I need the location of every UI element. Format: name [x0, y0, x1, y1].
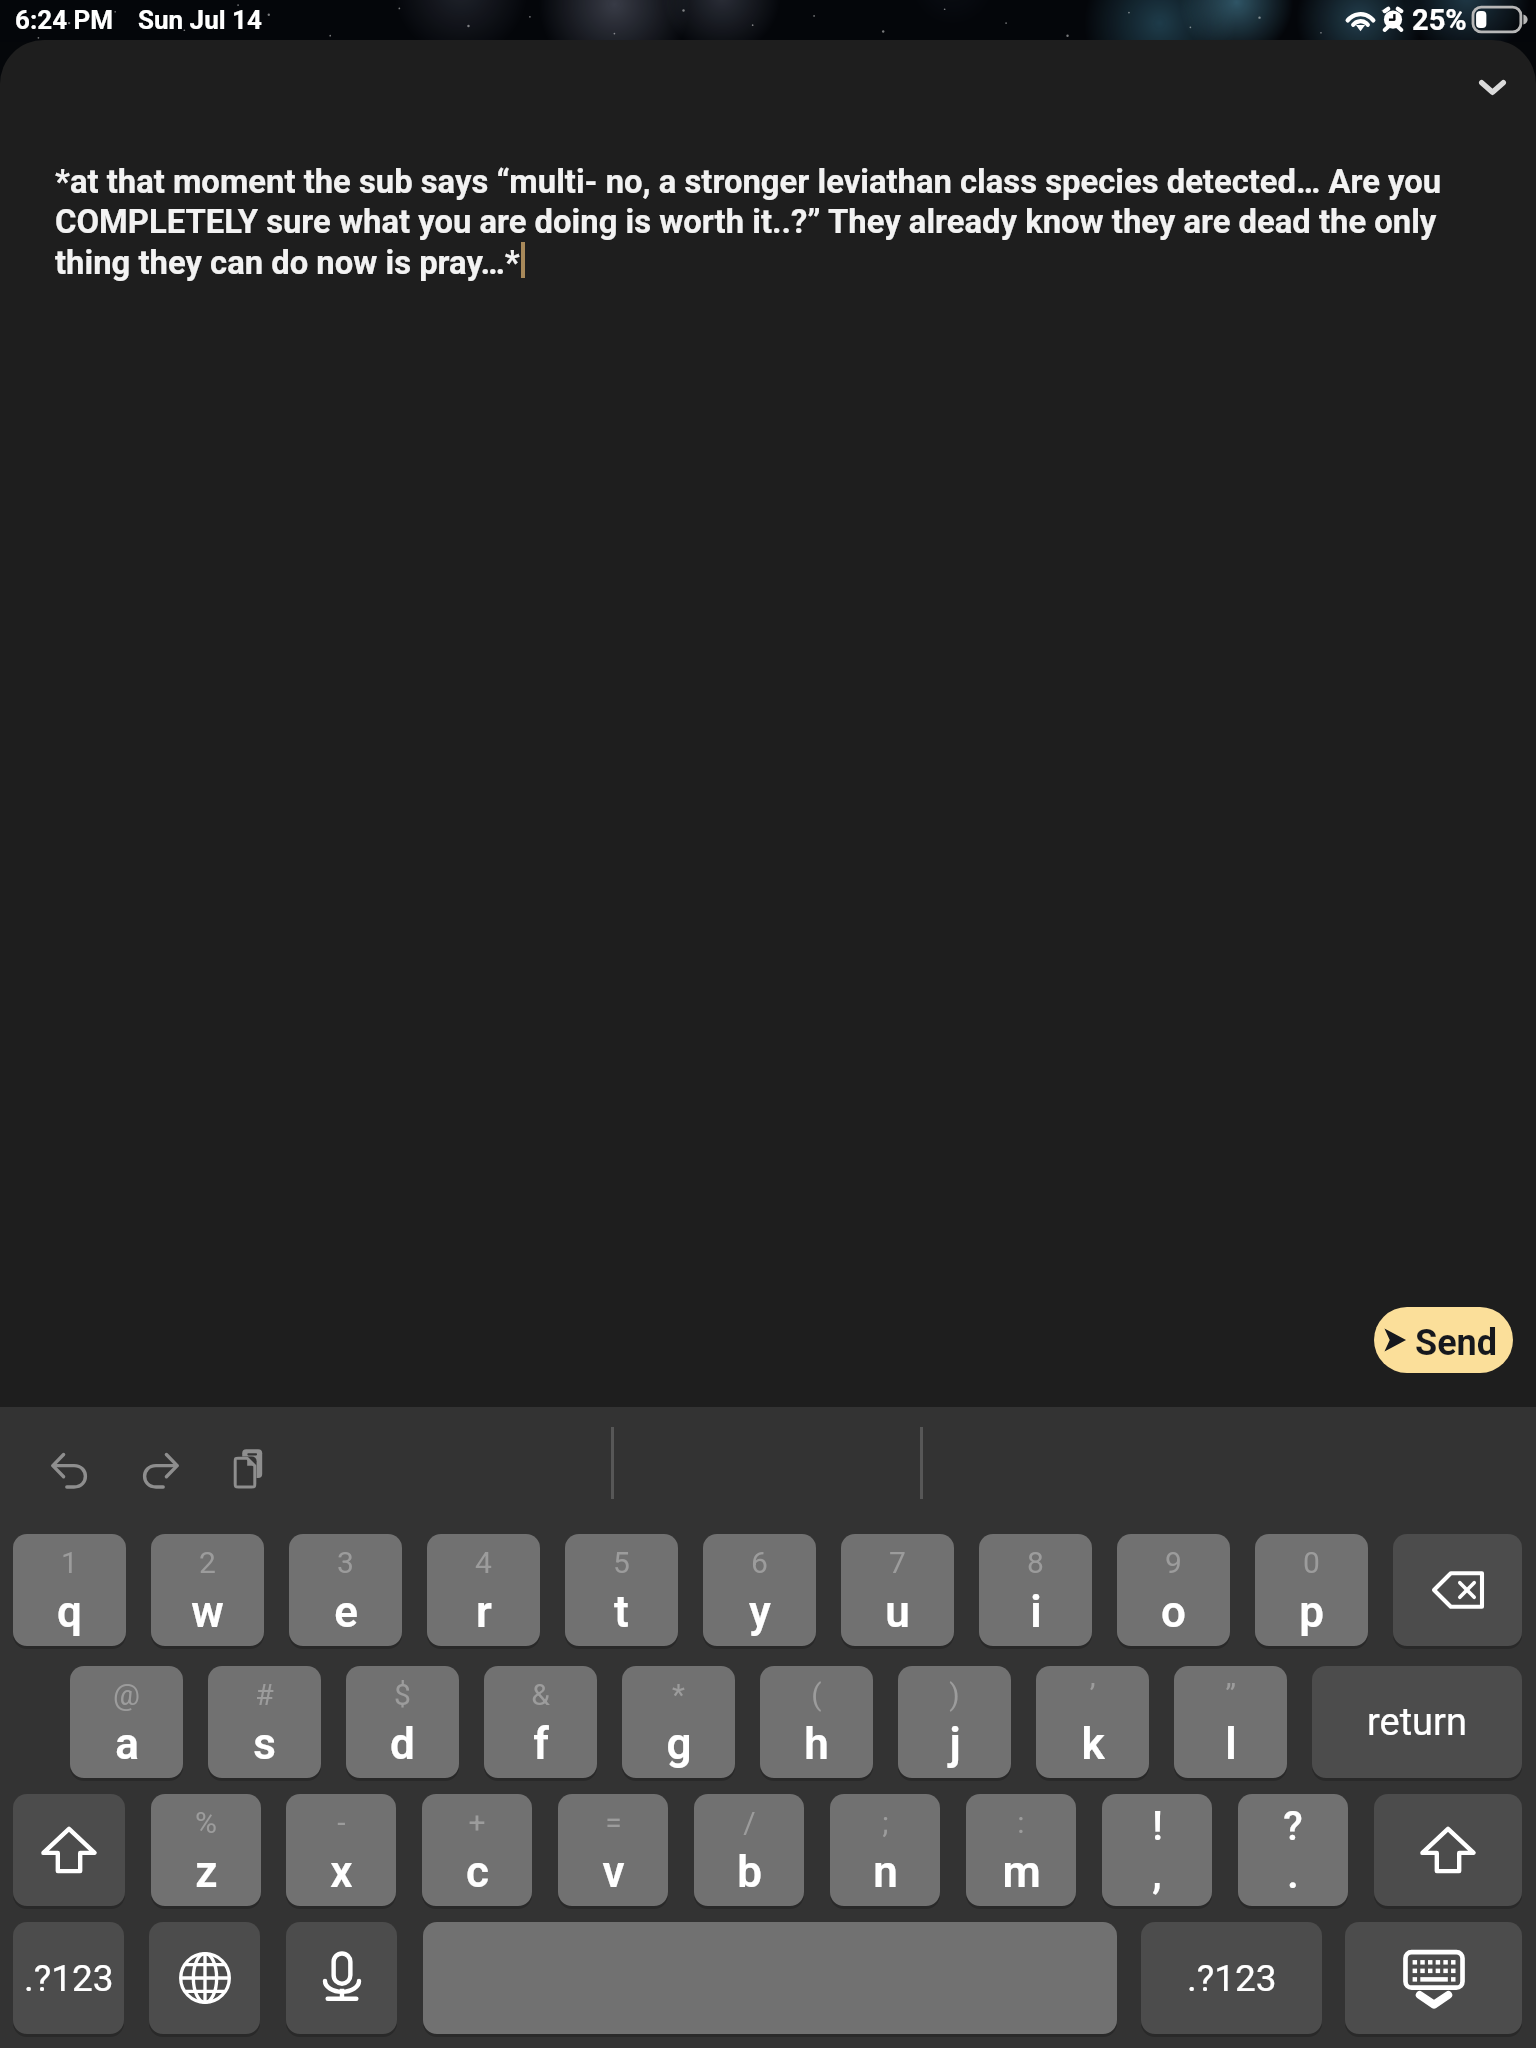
staticText: 3: [337, 1545, 354, 1580]
button[interactable]: (: [760, 1666, 873, 1778]
staticText: $: [394, 1677, 411, 1712]
staticText: ;: [882, 1805, 889, 1840]
staticText: w: [191, 1586, 224, 1638]
staticText: g: [666, 1718, 692, 1770]
button[interactable]: ’: [1036, 1666, 1149, 1778]
staticText: 2: [199, 1545, 216, 1580]
staticText: (: [811, 1677, 822, 1712]
staticText: thing they can do now is pray…*: [55, 244, 520, 282]
staticText: f: [533, 1718, 549, 1770]
button[interactable]: 5: [565, 1534, 678, 1646]
staticText: o: [1161, 1586, 1186, 1638]
staticText: x: [330, 1846, 353, 1898]
button[interactable]: 3: [289, 1534, 402, 1646]
button[interactable]: .?123: [1141, 1922, 1322, 2034]
staticText: u: [885, 1586, 910, 1638]
staticText: 1: [61, 1545, 78, 1580]
staticText: h: [804, 1718, 829, 1770]
button[interactable]: =: [558, 1794, 668, 1906]
button[interactable]: ?: [1238, 1794, 1348, 1906]
button[interactable]: 4: [427, 1534, 540, 1646]
staticText: Sun Jul 14: [138, 5, 262, 35]
staticText: Send: [1415, 1322, 1498, 1364]
button[interactable]: ”: [1174, 1666, 1287, 1778]
button[interactable]: Dictation: [286, 1922, 397, 2034]
staticText: v: [602, 1846, 625, 1898]
button[interactable]: 1: [13, 1534, 126, 1646]
button[interactable]: Undo: [36, 1434, 104, 1502]
staticText: ”: [1225, 1677, 1236, 1712]
staticText: @: [113, 1677, 140, 1712]
staticText: *at that moment the sub says “multi- no,…: [55, 163, 1442, 201]
staticText: 4: [475, 1545, 492, 1580]
button[interactable]: Collapse: [1458, 53, 1526, 121]
staticText: 25%: [1412, 3, 1467, 37]
button[interactable]: /: [694, 1794, 804, 1906]
button[interactable]: +: [422, 1794, 532, 1906]
button[interactable]: 8: [979, 1534, 1092, 1646]
staticText: l: [1225, 1718, 1237, 1770]
staticText: ’: [1089, 1677, 1096, 1712]
button[interactable]: Language: [149, 1922, 260, 2034]
button[interactable]: 9: [1117, 1534, 1230, 1646]
button[interactable]: ;: [830, 1794, 940, 1906]
button[interactable]: Shift: [1374, 1794, 1522, 1906]
staticText: :: [1017, 1805, 1025, 1840]
staticText: c: [466, 1846, 489, 1898]
button[interactable]: Backspace: [1393, 1534, 1522, 1646]
staticText: t: [614, 1586, 629, 1638]
button[interactable]: 6: [703, 1534, 816, 1646]
staticText: m: [1002, 1846, 1041, 1898]
button[interactable]: Redo: [126, 1434, 194, 1502]
staticText: d: [390, 1718, 415, 1770]
button[interactable]: .?123: [13, 1922, 124, 2034]
button[interactable]: #: [208, 1666, 321, 1778]
staticText: n: [873, 1846, 898, 1898]
button[interactable]: @: [70, 1666, 183, 1778]
staticText: +: [468, 1805, 486, 1840]
staticText: 0: [1303, 1545, 1320, 1580]
staticText: i: [1030, 1586, 1042, 1638]
staticText: &: [531, 1677, 550, 1712]
staticText: .?123: [1187, 1957, 1277, 2000]
staticText: ,: [1152, 1851, 1162, 1898]
staticText: #: [255, 1677, 274, 1712]
button[interactable]: -: [286, 1794, 396, 1906]
button[interactable]: *: [622, 1666, 735, 1778]
button[interactable]: 2: [151, 1534, 264, 1646]
staticText: 6:24 PM: [15, 5, 114, 35]
staticText: 8: [1027, 1545, 1044, 1580]
staticText: a: [115, 1718, 139, 1770]
staticText: %: [195, 1805, 217, 1840]
staticText: -: [337, 1805, 346, 1840]
button[interactable]: Shift: [13, 1794, 125, 1906]
staticText: .?123: [24, 1957, 114, 2000]
staticText: s: [253, 1718, 276, 1770]
button[interactable]: Send: [1374, 1307, 1513, 1373]
button[interactable]: %: [151, 1794, 261, 1906]
staticText: 7: [889, 1545, 906, 1580]
staticText: p: [1299, 1586, 1324, 1638]
staticText: k: [1081, 1718, 1105, 1770]
staticText: e: [334, 1586, 358, 1638]
staticText: =: [605, 1805, 622, 1840]
staticText: r: [476, 1586, 492, 1638]
staticText: q: [57, 1586, 82, 1638]
button[interactable]: ): [898, 1666, 1011, 1778]
staticText: y: [749, 1586, 771, 1638]
button[interactable]: Hide keyboard: [1345, 1922, 1522, 2034]
button[interactable]: !: [1102, 1794, 1212, 1906]
button[interactable]: 0: [1255, 1534, 1368, 1646]
staticText: *: [672, 1677, 685, 1712]
button[interactable]: Paste: [215, 1434, 283, 1502]
staticText: return: [1367, 1700, 1467, 1745]
button[interactable]: return: [1312, 1666, 1522, 1778]
staticText: 5: [613, 1545, 630, 1580]
staticText: COMPLETELY sure what you are doing is wo…: [55, 203, 1437, 241]
staticText: 6: [751, 1545, 768, 1580]
button[interactable]: &: [484, 1666, 597, 1778]
button[interactable]: :: [966, 1794, 1076, 1906]
button[interactable]: $: [346, 1666, 459, 1778]
button[interactable]: 7: [841, 1534, 954, 1646]
